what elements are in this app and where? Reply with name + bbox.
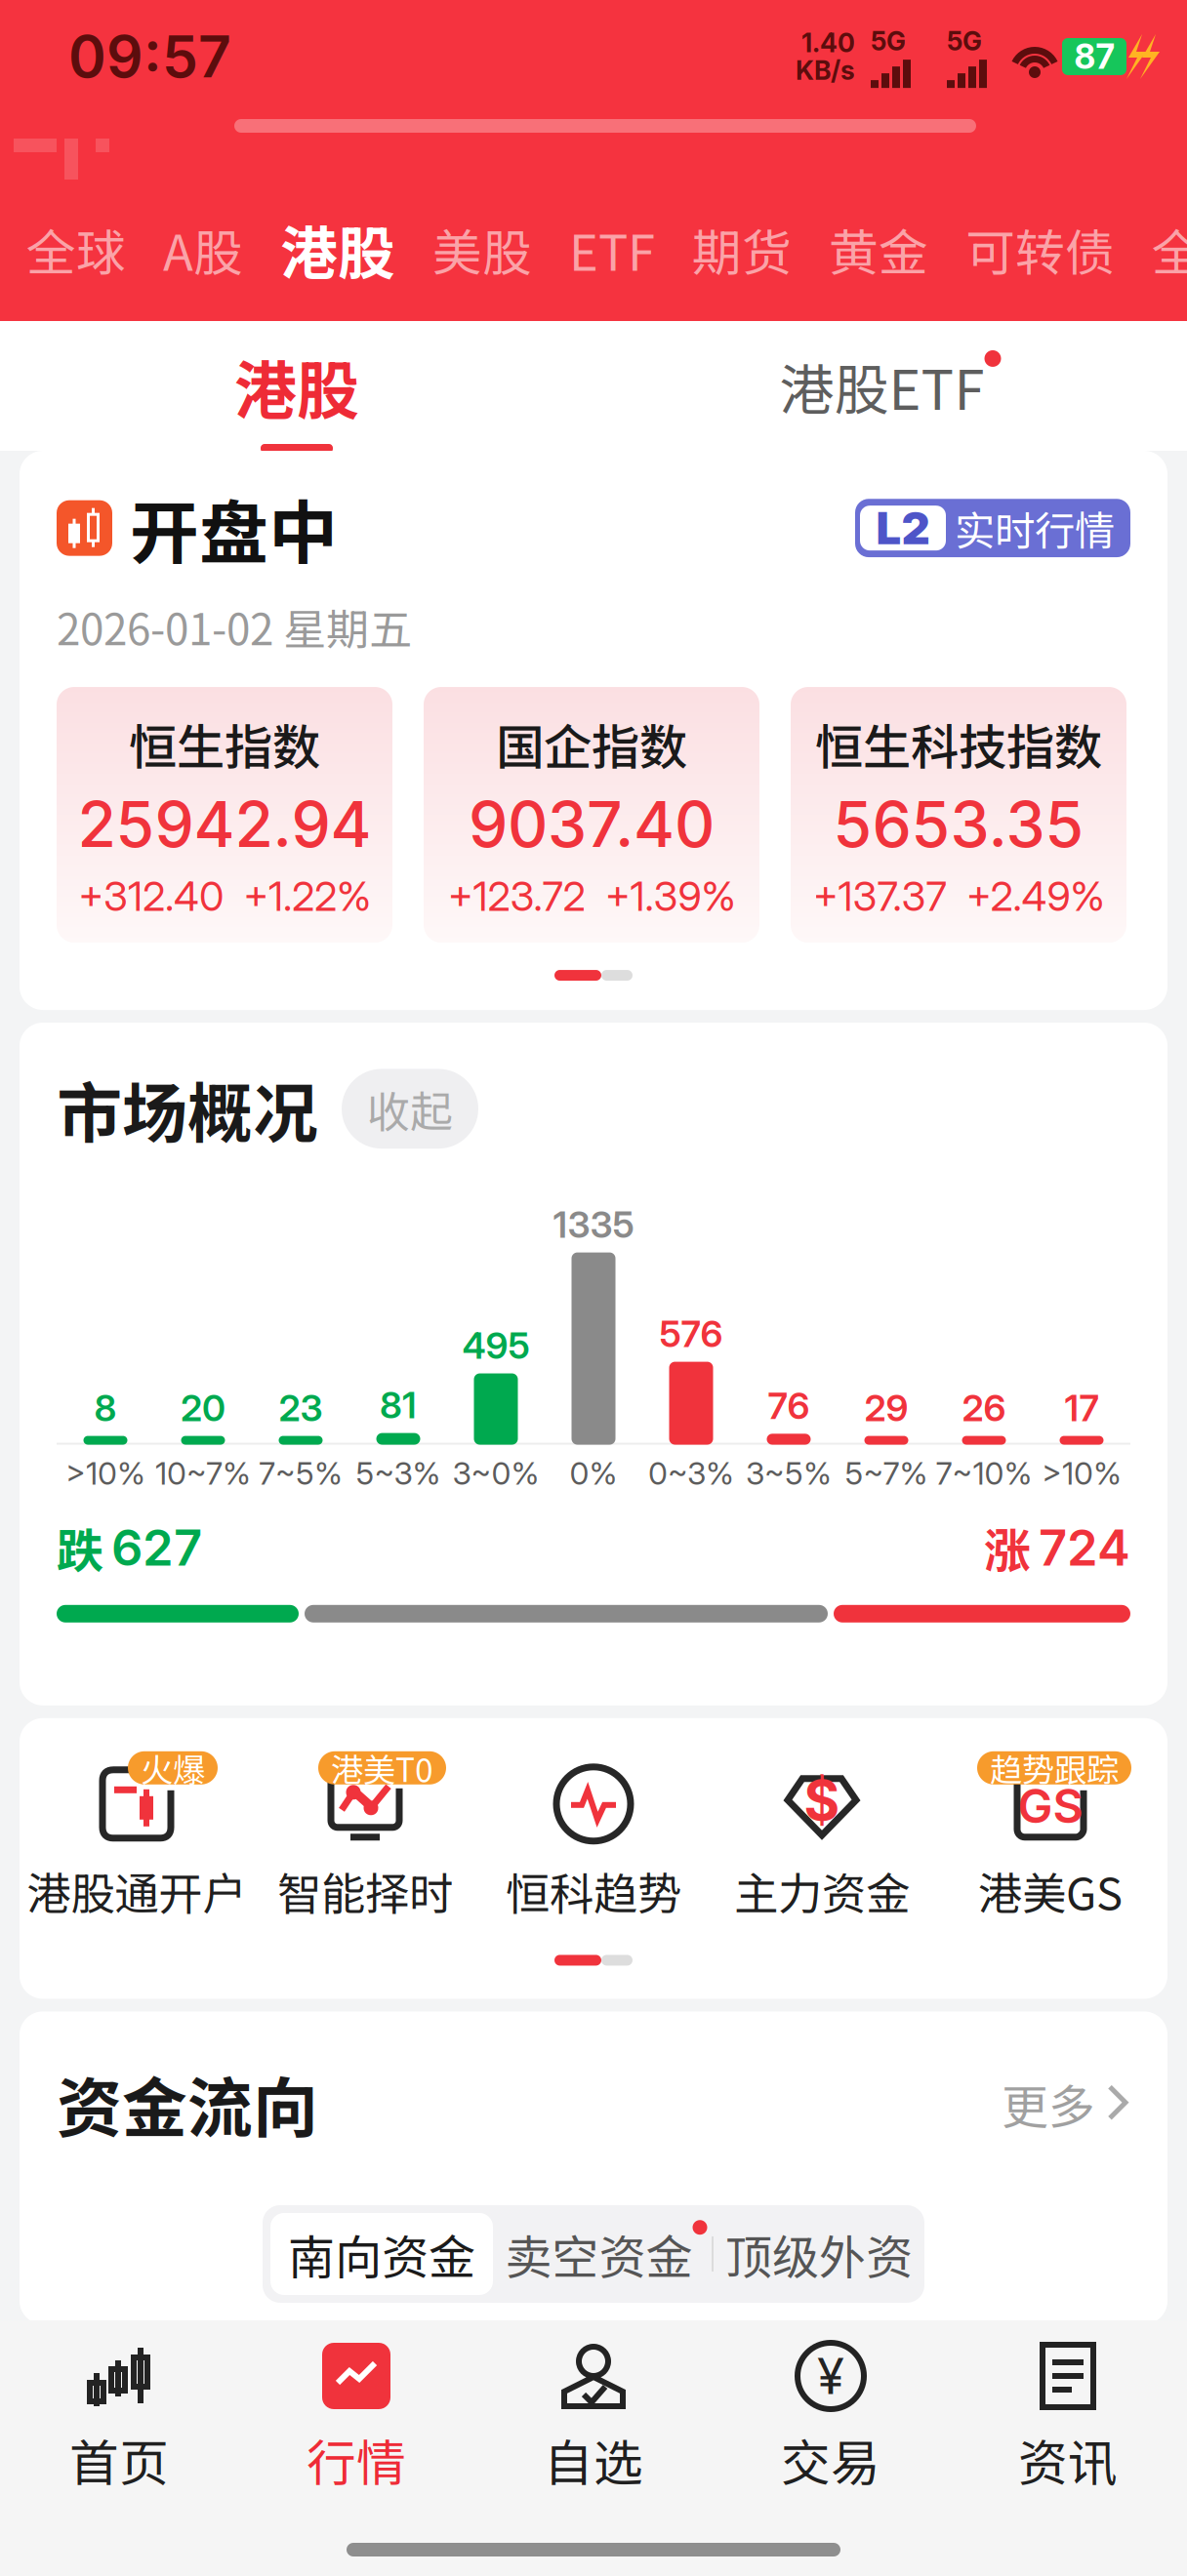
staticText: 29 <box>864 1386 908 1430</box>
staticText: 3~5% <box>746 1454 832 1492</box>
staticText: 1335 <box>553 1203 634 1247</box>
staticText: 25942.94 <box>78 786 371 862</box>
staticText: A股 <box>163 213 243 285</box>
staticText: 跌 <box>57 1514 103 1582</box>
staticText: 7~5% <box>259 1454 343 1492</box>
staticText: 顶级外资 <box>725 2220 913 2288</box>
staticText: ¥ <box>817 2346 844 2406</box>
staticText: 5~3% <box>356 1454 441 1492</box>
button[interactable]: 港股ETF <box>593 319 1187 453</box>
staticText: 主力资金 <box>734 1859 910 1923</box>
staticText: 火爆 <box>141 1744 205 1791</box>
staticText: +137.37 +2.49% <box>813 872 1105 921</box>
button[interactable]: 顶级外资 <box>714 2205 924 2303</box>
staticText: 全 <box>1152 213 1187 285</box>
button[interactable]: 港美T0 <box>260 1734 471 1923</box>
staticText: 76 <box>768 1384 810 1428</box>
staticText: >10% <box>65 1454 145 1492</box>
staticText: GS <box>1018 1778 1083 1834</box>
staticText: 恒生科技指数 <box>815 709 1102 779</box>
staticText: 0% <box>570 1454 617 1492</box>
staticText: 南向资金 <box>288 2220 475 2288</box>
staticText: 5653.35 <box>833 786 1084 862</box>
button[interactable]: 美股 <box>414 213 551 285</box>
button[interactable]: 恒科趋势 <box>488 1734 699 1923</box>
button[interactable]: 行情 <box>238 2342 475 2498</box>
staticText: 1.40 <box>801 27 855 59</box>
staticText: 自选 <box>544 2424 643 2495</box>
button[interactable]: 资讯 <box>949 2342 1187 2498</box>
staticText: 10~7% <box>155 1454 251 1492</box>
staticText: 开盘中 <box>130 478 338 578</box>
staticText: 更多 <box>1002 2070 1095 2137</box>
staticText: 港股 <box>280 208 395 291</box>
button[interactable]: 恒生科技指数 <box>791 687 1126 943</box>
staticText: 23 <box>279 1386 323 1430</box>
staticText: 智能择时 <box>277 1859 453 1923</box>
staticText: 09:57 <box>68 22 231 91</box>
staticText: 5G <box>871 25 906 57</box>
button[interactable]: 港股 <box>0 319 593 453</box>
staticText: 20 <box>181 1386 225 1430</box>
button[interactable]: $ <box>716 1734 927 1923</box>
staticText: 交易 <box>781 2424 880 2495</box>
button[interactable]: 更多 <box>1002 2070 1130 2137</box>
button[interactable]: ¥ <box>712 2342 949 2498</box>
button[interactable]: A股 <box>144 213 262 285</box>
staticText: L2 <box>876 501 930 555</box>
button[interactable]: 全球 <box>8 213 144 285</box>
staticText: 港美T0 <box>331 1744 433 1791</box>
button[interactable]: ETF <box>551 213 674 285</box>
staticText: 724 <box>1039 1518 1130 1578</box>
staticText: 0~3% <box>648 1454 734 1492</box>
staticText: 5~7% <box>845 1454 928 1492</box>
staticText: 实时行情 <box>955 499 1115 557</box>
staticText: 495 <box>462 1324 530 1368</box>
staticText: 资讯 <box>1018 2424 1118 2495</box>
staticText: 资金流向 <box>57 2056 318 2150</box>
button[interactable]: 恒生指数 <box>57 687 392 943</box>
staticText: 9037.40 <box>469 786 715 862</box>
staticText: $ <box>804 1767 840 1833</box>
staticText: 全球 <box>26 213 126 285</box>
staticText: 港美GS <box>978 1859 1123 1923</box>
button[interactable]: GS <box>945 1734 1156 1923</box>
staticText: +123.72 +1.39% <box>448 872 736 921</box>
button[interactable]: 港股 <box>262 208 414 291</box>
staticText: 3~0% <box>452 1454 539 1492</box>
staticText: 7~10% <box>936 1454 1032 1492</box>
staticText: 2026-01-02 星期五 <box>57 596 412 658</box>
button[interactable]: 国企指数 <box>424 687 759 943</box>
staticText: ETF <box>569 213 655 285</box>
staticText: 17 <box>1064 1386 1099 1430</box>
staticText: 港股ETF <box>779 346 984 426</box>
staticText: 首页 <box>69 2424 169 2495</box>
button[interactable]: 火爆 <box>31 1734 242 1923</box>
staticText: 收起 <box>367 1078 453 1140</box>
staticText: 港股通开户 <box>27 1859 246 1923</box>
button[interactable]: 南向资金 <box>270 2213 493 2295</box>
staticText: 涨 <box>984 1514 1031 1582</box>
staticText: +312.40 +1.22% <box>78 872 371 921</box>
staticText: 期货 <box>692 213 792 285</box>
staticText: 市场概况 <box>57 1062 318 1156</box>
button[interactable]: 首页 <box>0 2342 238 2498</box>
staticText: 恒生指数 <box>129 709 320 779</box>
staticText: 行情 <box>307 2424 406 2495</box>
staticText: 576 <box>659 1312 723 1356</box>
staticText: 5G <box>947 25 982 57</box>
button[interactable]: 可转债 <box>947 213 1133 285</box>
button[interactable]: 黄金 <box>810 213 947 285</box>
button[interactable]: 期货 <box>674 213 810 285</box>
staticText: 美股 <box>432 213 532 285</box>
staticText: 黄金 <box>829 213 928 285</box>
staticText: 趋势跟踪 <box>990 1744 1119 1791</box>
button[interactable]: 收起 <box>342 1069 478 1149</box>
staticText: 8 <box>94 1386 117 1430</box>
button[interactable]: 自选 <box>475 2342 712 2498</box>
staticText: 国企指数 <box>496 709 687 779</box>
staticText: 26 <box>962 1386 1006 1430</box>
button[interactable]: 卖空资金 <box>501 2205 712 2303</box>
staticText: 卖空资金 <box>505 2220 693 2288</box>
button[interactable]: 全 <box>1133 213 1187 285</box>
